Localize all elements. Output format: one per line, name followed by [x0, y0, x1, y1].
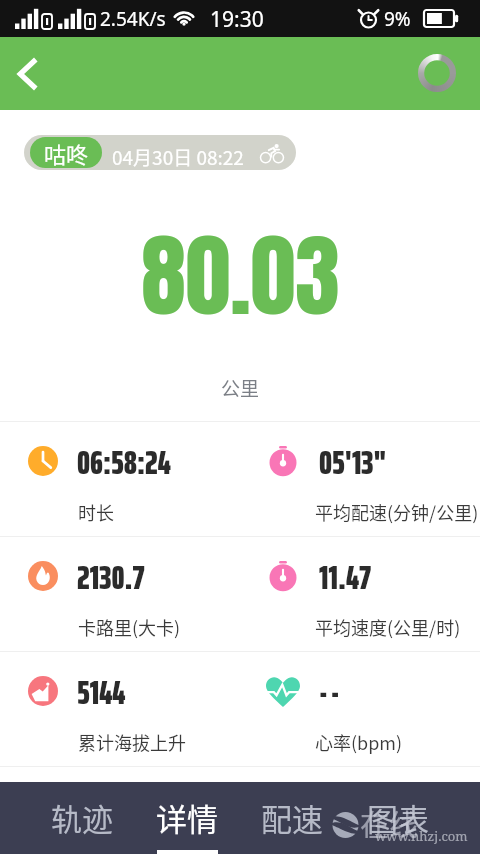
button[interactable]: 图表	[345, 782, 451, 854]
staticText: 06:58:24	[77, 437, 171, 489]
staticText: 5144	[77, 667, 126, 719]
staticText: 轨迹	[51, 795, 113, 840]
staticText: 卡路里(大卡)	[78, 614, 181, 640]
staticText: --	[319, 667, 343, 719]
staticText: 05'13"	[319, 437, 387, 489]
staticText: 累计海拔上升	[78, 729, 186, 755]
staticText: 图表	[367, 795, 429, 840]
staticText: 平均速度(公里/时)	[315, 614, 461, 640]
staticText: 配速	[261, 795, 323, 840]
staticText: 公里	[221, 374, 260, 402]
button[interactable]: 详情	[134, 782, 240, 854]
button[interactable]: 轨迹	[29, 782, 135, 854]
staticText: 2130.7	[77, 552, 145, 604]
button[interactable]: Back	[2, 48, 54, 100]
staticText: 11.47	[319, 552, 371, 604]
staticText: 咕咚	[44, 137, 89, 168]
staticText: 04月30日 08:22	[112, 143, 244, 170]
staticText: 平均配速(分钟/公里)	[315, 499, 479, 525]
staticText: www.nhzj.com	[375, 827, 468, 845]
staticText: 19:30	[210, 5, 264, 34]
staticText: 心率(bpm)	[315, 729, 403, 755]
staticText: 在线	[360, 802, 419, 844]
button[interactable]: 配速	[239, 782, 345, 854]
staticText: 详情	[156, 795, 218, 840]
button[interactable]: Loading	[415, 51, 459, 95]
staticText: 80.03	[141, 208, 340, 343]
staticText: 2.54K/s	[100, 6, 166, 32]
staticText: 时长	[78, 499, 114, 525]
button[interactable]: 咕咚	[24, 135, 296, 170]
staticText: 9%	[384, 6, 411, 32]
